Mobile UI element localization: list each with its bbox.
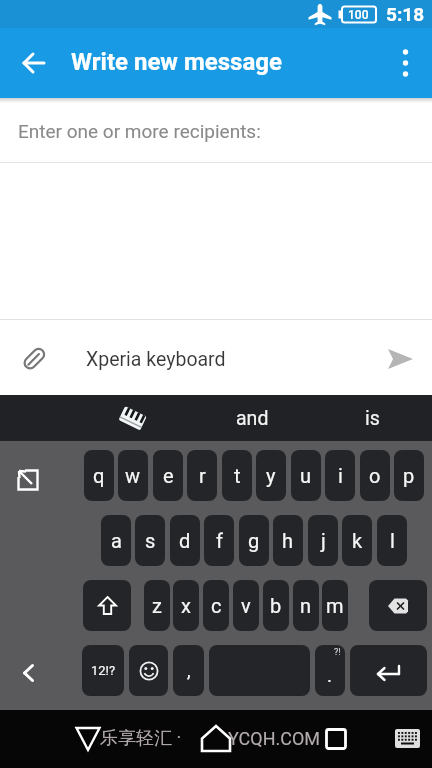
- button[interactable]: i: [325, 450, 355, 501]
- button[interactable]: t: [222, 450, 252, 501]
- staticText: o: [369, 464, 381, 487]
- button[interactable]: and: [212, 395, 292, 441]
- button[interactable]: a: [101, 515, 131, 566]
- staticText: is: [365, 407, 380, 430]
- staticText: k: [352, 529, 363, 552]
- button[interactable]: [9, 653, 49, 693]
- staticText: 5:18: [386, 3, 425, 25]
- staticText: n: [300, 594, 312, 617]
- staticText: e: [163, 464, 174, 487]
- button[interactable]: [113, 399, 151, 437]
- button[interactable]: q: [84, 450, 114, 501]
- button[interactable]: f: [204, 515, 234, 566]
- button[interactable]: d: [170, 515, 200, 566]
- staticText: x: [181, 594, 191, 617]
- staticText: YCQH.COM: [228, 728, 321, 749]
- button[interactable]: k: [342, 515, 372, 566]
- button[interactable]: b: [263, 580, 289, 631]
- button[interactable]: [390, 726, 424, 752]
- staticText: r: [199, 464, 206, 487]
- button[interactable]: n: [293, 580, 319, 631]
- button[interactable]: [66, 717, 110, 761]
- button[interactable]: [194, 717, 238, 761]
- button[interactable]: [314, 717, 358, 761]
- button[interactable]: o: [360, 450, 390, 501]
- button[interactable]: [369, 580, 427, 631]
- button[interactable]: p: [394, 450, 424, 501]
- staticText: z: [152, 594, 162, 617]
- staticText: t: [234, 464, 241, 487]
- staticText: p: [403, 464, 415, 487]
- staticText: c: [211, 594, 222, 617]
- button[interactable]: [0, 324, 68, 394]
- staticText: l: [390, 529, 395, 552]
- button[interactable]: s: [135, 515, 165, 566]
- staticText: h: [282, 529, 294, 552]
- staticText: u: [300, 464, 312, 487]
- staticText: y: [266, 464, 276, 487]
- button[interactable]: Xperia keyboard: [86, 348, 388, 371]
- staticText: b: [270, 594, 282, 617]
- staticText: s: [145, 529, 156, 552]
- staticText: f: [216, 529, 223, 552]
- button[interactable]: [209, 645, 310, 696]
- button[interactable]: v: [233, 580, 259, 631]
- button[interactable]: [8, 460, 48, 500]
- button[interactable]: x: [173, 580, 199, 631]
- button[interactable]: [370, 324, 432, 394]
- button[interactable]: 12!?: [82, 645, 124, 696]
- staticText: a: [111, 529, 122, 552]
- button[interactable]: h: [273, 515, 303, 566]
- button[interactable]: l: [377, 515, 407, 566]
- button[interactable]: c: [203, 580, 229, 631]
- staticText: .: [327, 664, 333, 686]
- staticText: g: [248, 529, 260, 552]
- button[interactable]: [386, 41, 426, 85]
- button[interactable]: is: [332, 395, 412, 441]
- staticText: 100: [348, 8, 369, 22]
- button[interactable]: r: [187, 450, 217, 501]
- button[interactable]: g: [239, 515, 269, 566]
- staticText: and: [236, 407, 269, 430]
- staticText: v: [241, 594, 251, 617]
- button[interactable]: ,: [173, 645, 204, 696]
- staticText: ,: [187, 660, 191, 681]
- button[interactable]: Enter one or more recipients:: [0, 98, 432, 163]
- button[interactable]: w: [118, 450, 148, 501]
- button[interactable]: z: [144, 580, 170, 631]
- button[interactable]: m: [322, 580, 348, 631]
- button[interactable]: [129, 645, 168, 696]
- button[interactable]: y: [256, 450, 286, 501]
- button[interactable]: [83, 580, 131, 631]
- staticText: ?!: [334, 647, 341, 658]
- staticText: 乐享轻汇 ·: [100, 727, 186, 750]
- staticText: d: [179, 529, 191, 552]
- staticText: m: [326, 594, 344, 617]
- staticText: Enter one or more recipients:: [18, 120, 261, 142]
- button[interactable]: [12, 41, 56, 85]
- button[interactable]: e: [153, 450, 183, 501]
- button[interactable]: [350, 645, 427, 696]
- staticText: w: [125, 464, 141, 487]
- button[interactable]: j: [308, 515, 338, 566]
- staticText: 12!?: [91, 663, 116, 678]
- staticText: q: [93, 464, 105, 487]
- staticText: j: [321, 529, 326, 552]
- staticText: Write new message: [71, 48, 282, 76]
- button[interactable]: ?!: [315, 645, 345, 696]
- staticText: i: [338, 464, 343, 487]
- button[interactable]: u: [291, 450, 321, 501]
